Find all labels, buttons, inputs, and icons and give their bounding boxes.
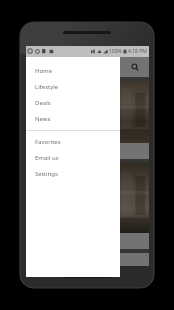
staticText: Email us [35,154,59,162]
staticText: Deals [35,99,51,107]
button[interactable]: Deals [26,95,120,111]
staticText: Settings [35,170,58,178]
button[interactable]: Home [26,63,120,79]
staticText: 4:18 PM [128,48,147,55]
staticText: Favorites [35,138,61,146]
staticText: 100% [109,48,122,55]
button[interactable]: Lifestyle [26,79,120,95]
button[interactable]: Settings [26,166,120,182]
button[interactable] [26,46,149,266]
button[interactable]: Favorites [26,134,120,150]
staticText: Home [35,67,53,75]
button[interactable]: Email us [26,150,120,166]
button[interactable]: News [26,111,120,127]
staticText: News [35,115,51,123]
button[interactable]: very [26,163,149,249]
button[interactable]: Search [127,59,143,75]
button[interactable]: Tips [26,81,149,159]
staticText: Lifestyle [35,83,59,91]
